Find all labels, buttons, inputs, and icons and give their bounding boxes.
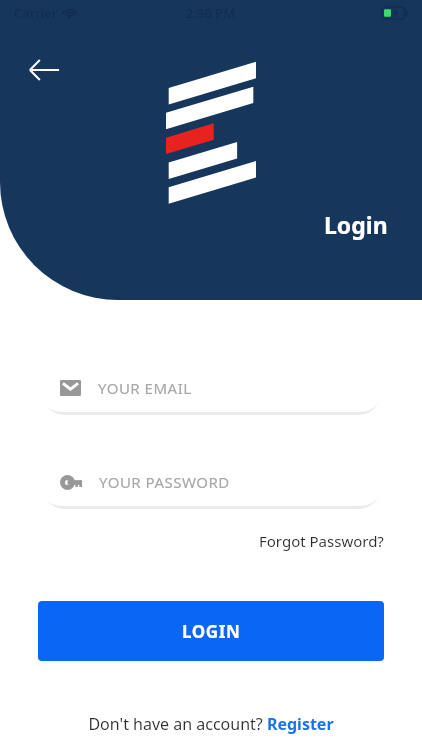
button[interactable]: LOGIN xyxy=(38,601,384,661)
button[interactable]: YOUR PASSWORD xyxy=(38,458,384,506)
staticText: YOUR EMAIL xyxy=(98,378,192,398)
staticText: YOUR PASSWORD xyxy=(99,472,230,492)
staticText: 2:36 PM xyxy=(186,4,236,22)
button[interactable]: Back xyxy=(20,46,68,94)
button[interactable]: Don't have an account? Register xyxy=(88,713,334,735)
button[interactable]: YOUR EMAIL xyxy=(38,364,384,412)
staticText: LOGIN xyxy=(182,620,241,643)
button[interactable]: Forgot Password? xyxy=(259,531,384,551)
staticText: Carrier xyxy=(14,4,58,22)
staticText: Login xyxy=(324,209,388,240)
